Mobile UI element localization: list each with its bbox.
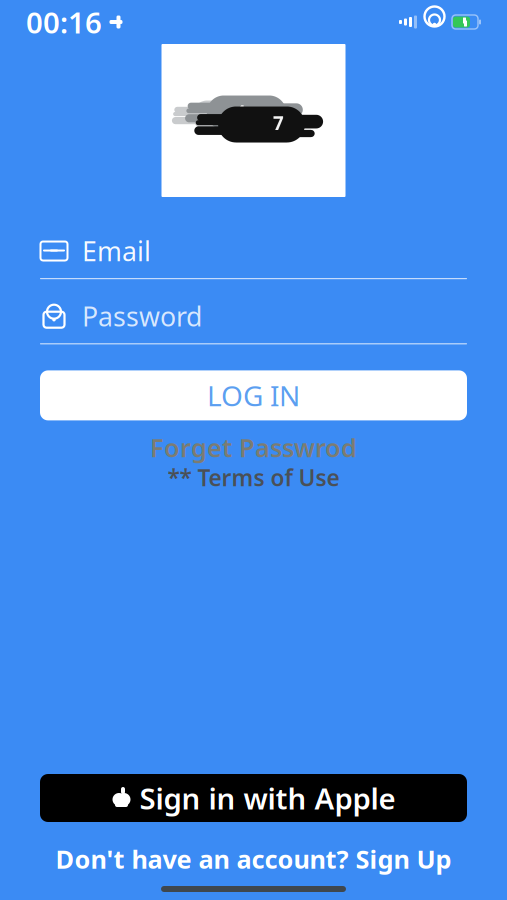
staticText: ** Terms of Use xyxy=(167,462,339,492)
staticText: 7 xyxy=(273,111,284,135)
button[interactable]: LOG IN xyxy=(40,370,467,420)
staticText: Password xyxy=(82,298,202,334)
staticText: 00:16 xyxy=(26,2,102,41)
staticText: Sign in with Apple xyxy=(139,778,395,817)
staticText: LOG IN xyxy=(207,377,300,414)
button[interactable]: Don't have an account? Sign Up xyxy=(40,846,467,872)
staticText: Forget Passwrod xyxy=(150,431,357,464)
staticText: 4 xyxy=(235,100,245,123)
staticText: Email xyxy=(82,233,151,269)
button[interactable]: Forget Passwrod xyxy=(40,434,467,460)
button[interactable]: ** Terms of Use xyxy=(40,465,467,489)
button[interactable]: Sign in with Apple xyxy=(40,774,467,822)
staticText: Don't have an account? Sign Up xyxy=(55,842,451,876)
